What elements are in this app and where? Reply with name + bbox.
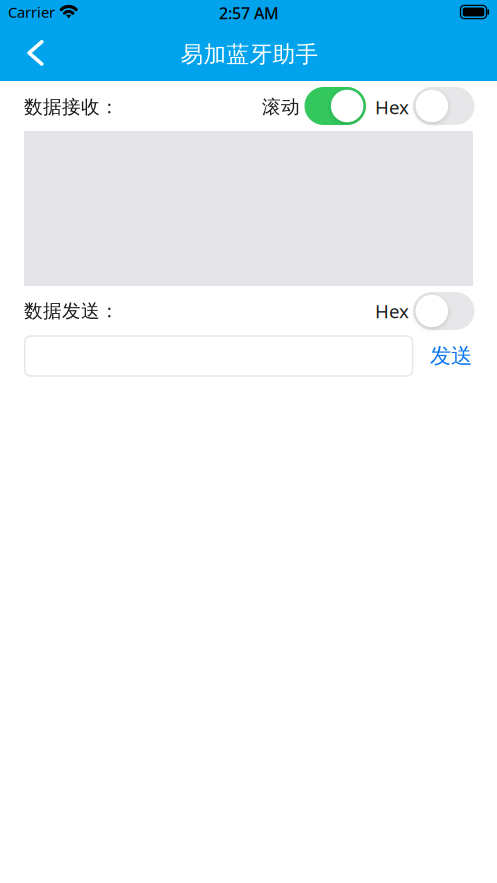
button[interactable]: 滚动 [304, 87, 366, 125]
staticText: 数据发送： [24, 299, 119, 322]
staticText: Hex [375, 299, 409, 323]
button[interactable]: Hex 接收 [413, 87, 474, 125]
staticText: Hex [375, 95, 409, 119]
staticText: 滚动 [262, 95, 300, 118]
staticText: 2:57 AM [219, 2, 279, 24]
staticText: 易加蓝牙助手 [180, 41, 318, 68]
staticText: 发送 [430, 343, 472, 369]
staticText: Carrier [8, 2, 55, 22]
button[interactable]: Back [0, 27, 60, 79]
button[interactable]: Hex 发送 [413, 292, 474, 330]
button[interactable]: 发送 [430, 343, 474, 369]
staticText: 数据接收： [24, 95, 119, 118]
button[interactable]: 数据发送输入框 [25, 336, 413, 376]
